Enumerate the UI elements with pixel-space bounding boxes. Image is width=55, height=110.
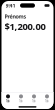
staticText: 9:41: [5, 2, 15, 9]
staticText: Tab: [19, 99, 23, 103]
staticText: Tab: [32, 99, 36, 103]
staticText: Tab: [6, 99, 10, 103]
staticText: Tab: [45, 99, 49, 103]
staticText: Prénoms: [4, 13, 26, 20]
staticText: $1,200.00: [4, 20, 45, 32]
